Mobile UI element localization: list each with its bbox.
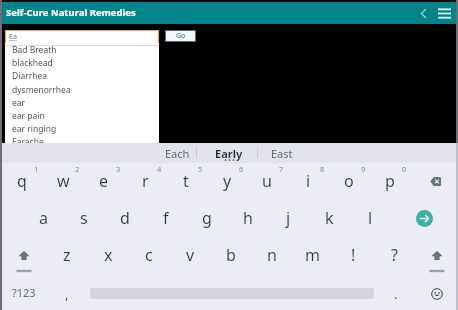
button[interactable]: Bad Breath	[5, 43, 159, 56]
staticText: o	[344, 170, 354, 192]
button[interactable]: j	[268, 205, 308, 231]
button[interactable]: o	[329, 168, 369, 194]
staticText: 2	[75, 164, 80, 174]
button[interactable]: Ea	[5, 30, 159, 44]
button[interactable]: Diarrhea	[5, 69, 159, 82]
staticText: Ea	[9, 32, 17, 42]
button[interactable]: Earache	[5, 135, 159, 143]
button[interactable]: !	[333, 242, 373, 268]
button[interactable]: m	[292, 242, 332, 268]
staticText: 0	[402, 164, 407, 174]
staticText: s	[80, 207, 88, 229]
button[interactable]: r	[125, 168, 165, 194]
staticText: n	[267, 244, 277, 266]
staticText: East	[271, 146, 293, 161]
button[interactable]: a	[23, 205, 63, 231]
button[interactable]: g	[187, 205, 227, 231]
staticText: ,	[65, 285, 69, 303]
staticText: Self-Cure Natural Remedies	[6, 6, 136, 19]
staticText: y	[223, 170, 232, 192]
button[interactable]: b	[211, 242, 251, 268]
staticText: i	[306, 170, 311, 192]
button[interactable]: d	[105, 205, 145, 231]
staticText: b	[226, 244, 236, 266]
button[interactable]: Enter	[410, 204, 438, 232]
staticText: 6	[239, 164, 244, 174]
staticText: c	[145, 244, 153, 266]
button[interactable]: Emoji	[427, 284, 447, 304]
button[interactable]: f	[146, 205, 186, 231]
button[interactable]: c	[129, 242, 169, 268]
button[interactable]: t	[166, 168, 206, 194]
staticText: ?123	[12, 285, 36, 300]
button[interactable]: v	[170, 242, 210, 268]
staticText: ear ringing	[12, 123, 57, 135]
button[interactable]: q	[2, 168, 42, 194]
button[interactable]: e	[84, 168, 124, 194]
button[interactable]: i	[288, 168, 328, 194]
button[interactable]: z	[47, 242, 87, 268]
staticText: Go	[176, 31, 186, 41]
button[interactable]: u	[247, 168, 287, 194]
staticText: Bad Breath	[12, 44, 57, 56]
button[interactable]: ear pain	[5, 109, 159, 122]
staticText: Diarrhea	[12, 70, 48, 82]
button[interactable]: n	[252, 242, 292, 268]
button[interactable]: East	[251, 143, 313, 163]
staticText: h	[243, 207, 253, 229]
button[interactable]: Each	[146, 143, 208, 163]
staticText: ?	[391, 244, 398, 266]
button[interactable]: l	[350, 205, 390, 231]
staticText: 9	[361, 164, 366, 174]
button[interactable]: Shift	[423, 242, 451, 272]
staticText: w	[57, 170, 70, 192]
button[interactable]: ?	[374, 242, 414, 268]
button[interactable]: y	[207, 168, 247, 194]
button[interactable]: dysmenorrhea	[5, 83, 159, 96]
staticText: ear	[12, 97, 26, 109]
button[interactable]: ear	[5, 96, 159, 109]
staticText: z	[63, 244, 71, 266]
button[interactable]: Shift	[10, 242, 38, 272]
staticText: j	[286, 207, 291, 229]
staticText: 3	[116, 164, 121, 174]
button[interactable]: Menu	[436, 5, 453, 22]
staticText: x	[104, 244, 113, 266]
staticText: .	[394, 285, 398, 303]
button[interactable]: x	[88, 242, 128, 268]
button[interactable]: s	[64, 205, 104, 231]
button[interactable]: Backspace	[423, 168, 447, 194]
staticText: r	[142, 170, 149, 192]
staticText: q	[17, 170, 27, 192]
button[interactable]: Early	[198, 143, 260, 163]
staticText: a	[39, 207, 48, 229]
button[interactable]: h	[228, 205, 268, 231]
staticText: f	[163, 207, 169, 229]
staticText: 7	[279, 164, 284, 174]
staticText: !	[351, 244, 356, 266]
staticText: ear pain	[12, 110, 45, 122]
staticText: 4	[157, 164, 162, 174]
staticText: u	[262, 170, 272, 192]
staticText: 5	[198, 164, 203, 174]
staticText: blackhead	[12, 57, 53, 69]
staticText: d	[120, 207, 130, 229]
button[interactable]: ,	[47, 281, 87, 307]
button[interactable]: Go	[165, 30, 196, 42]
button[interactable]: k	[309, 205, 349, 231]
button[interactable]: Back	[415, 5, 432, 22]
staticText: dysmenorrhea	[12, 84, 71, 96]
staticText: k	[325, 207, 334, 229]
button[interactable]: w	[43, 168, 83, 194]
staticText: Early	[215, 146, 243, 161]
button[interactable]: ear ringing	[5, 122, 159, 135]
button[interactable]: p	[370, 168, 410, 194]
button[interactable]: ?123	[4, 279, 44, 305]
staticText: t	[183, 170, 189, 192]
button[interactable]: blackhead	[5, 56, 159, 69]
button[interactable]: .	[376, 281, 416, 307]
staticText: m	[305, 244, 320, 266]
staticText: 1	[34, 164, 39, 174]
staticText: v	[186, 244, 195, 266]
